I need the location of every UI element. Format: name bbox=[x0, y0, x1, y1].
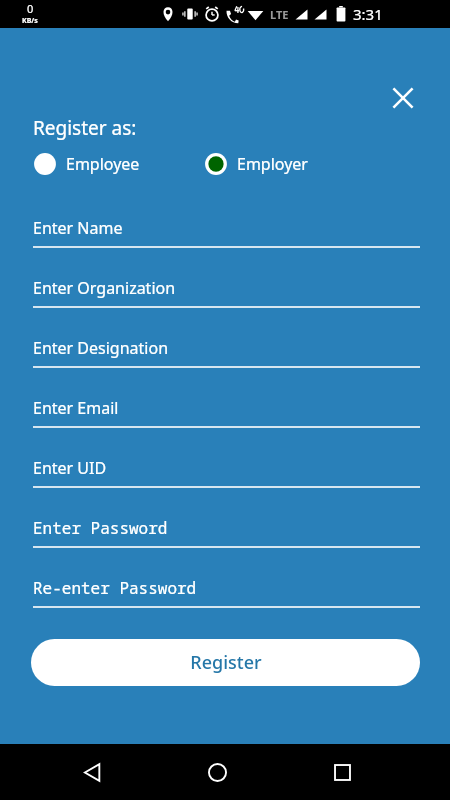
button[interactable]: Enter Organization bbox=[33, 277, 420, 308]
button[interactable]: Enter Designation bbox=[33, 337, 420, 368]
staticText: 3:31 bbox=[353, 4, 383, 24]
button[interactable]: Employee bbox=[33, 152, 140, 176]
button[interactable]: Close bbox=[381, 76, 425, 120]
button[interactable]: Enter Email bbox=[33, 397, 420, 428]
staticText: Enter Password bbox=[33, 517, 168, 539]
button[interactable]: Employer bbox=[204, 152, 308, 176]
button[interactable]: Enter Name bbox=[33, 217, 420, 248]
staticText: Enter Designation bbox=[33, 337, 169, 359]
staticText: Enter Name bbox=[33, 217, 123, 239]
staticText: Re-enter Password bbox=[33, 577, 197, 599]
staticText: Enter Organization bbox=[33, 277, 176, 299]
button[interactable]: Home bbox=[193, 748, 241, 796]
staticText: LTE bbox=[270, 7, 289, 22]
staticText: Employee bbox=[66, 153, 140, 175]
button[interactable]: Recent apps bbox=[318, 748, 366, 796]
button[interactable]: Register bbox=[31, 639, 420, 686]
staticText: KB/s bbox=[22, 16, 38, 26]
button[interactable]: Enter UID bbox=[33, 457, 420, 488]
staticText: Enter Email bbox=[33, 397, 119, 419]
button[interactable]: Re-enter Password bbox=[33, 577, 420, 608]
staticText: Employer bbox=[237, 153, 308, 175]
staticText: 0 bbox=[27, 1, 34, 16]
staticText: Register bbox=[190, 650, 262, 675]
button[interactable]: Enter Password bbox=[33, 517, 420, 548]
button[interactable]: Back bbox=[68, 748, 116, 796]
staticText: Enter UID bbox=[33, 457, 107, 479]
staticText: Register as: bbox=[33, 115, 137, 141]
